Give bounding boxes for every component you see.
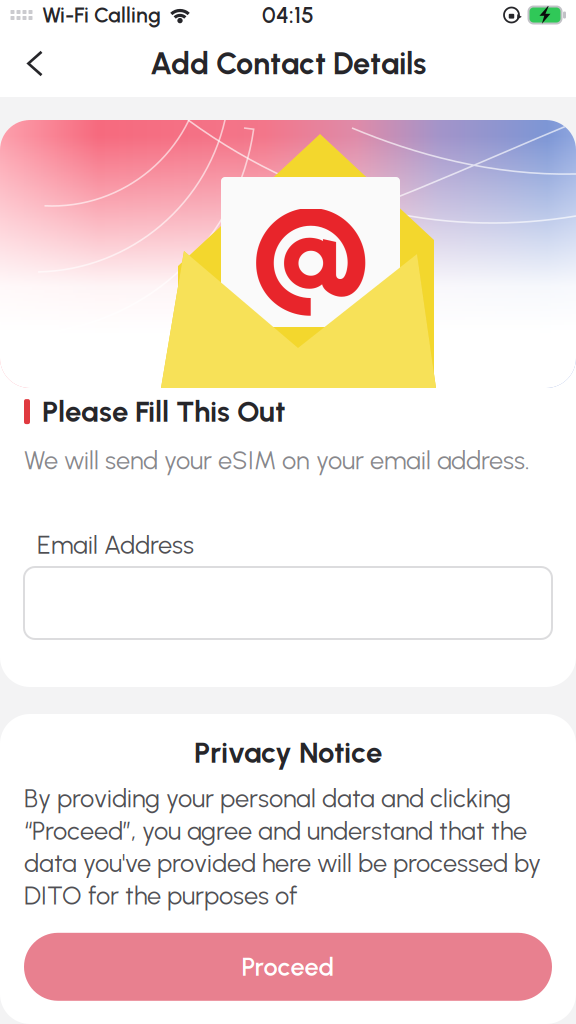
staticText: Add Contact Details — [150, 45, 426, 82]
staticText: We will send your eSIM on your email add… — [24, 445, 530, 476]
staticText: By providing your personal data and clic… — [24, 783, 541, 911]
staticText: Privacy Notice — [194, 735, 382, 770]
staticText: 04:15 — [262, 1, 314, 29]
staticText: Email Address — [37, 530, 194, 560]
staticText: @ — [251, 177, 370, 331]
staticText: Please Fill This Out — [42, 394, 286, 429]
button[interactable]: Back — [10, 36, 58, 90]
button[interactable]: Proceed — [24, 933, 552, 1001]
staticText: Wi-Fi Calling — [42, 2, 161, 28]
staticText: Proceed — [241, 952, 334, 982]
